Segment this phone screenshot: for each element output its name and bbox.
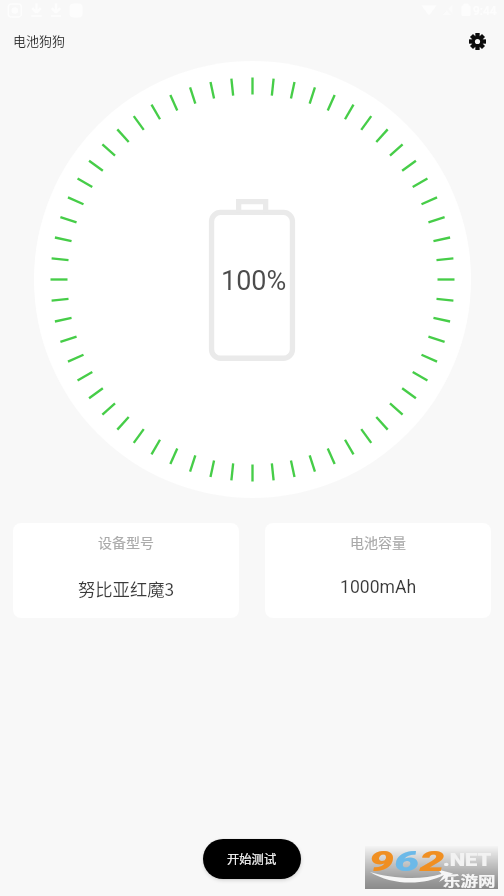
button[interactable]: Settings [462,26,492,56]
staticText: 2 [420,845,445,878]
staticText: 100% [221,265,287,297]
button[interactable]: 开始测试 [203,839,301,879]
staticText: 电池容量 [350,532,406,552]
staticText: 努比亚红魔3 [78,576,175,601]
staticText: 开始测试 [227,850,277,868]
staticText: 乐游网 [443,870,495,890]
staticText: .NET [443,849,492,870]
staticText: 电池狗狗 [13,31,66,50]
staticText: 1000mAh [340,577,417,598]
staticText: 设备型号 [98,532,154,552]
button[interactable]: 电池容量 [265,523,491,618]
staticText: 6 [394,845,420,878]
button[interactable]: 设备型号 [13,523,239,618]
staticText: 9 [369,845,394,878]
